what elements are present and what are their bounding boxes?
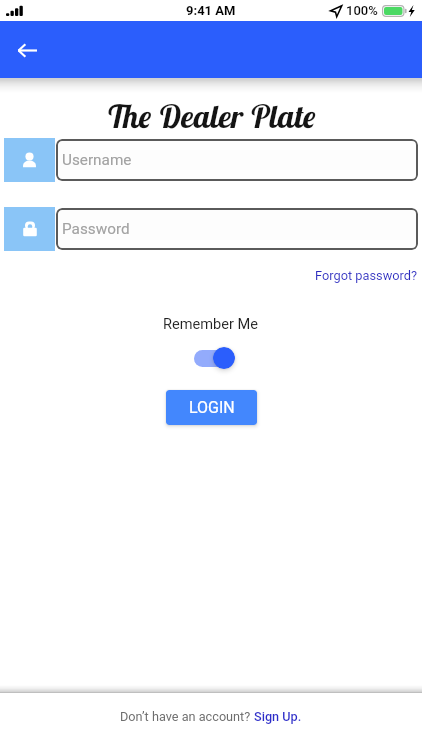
staticText: Remember Me	[163, 315, 259, 332]
button[interactable]: Password	[56, 208, 418, 250]
staticText: 100%	[346, 3, 378, 18]
button[interactable]: LOGIN	[166, 390, 257, 425]
staticText: Don’t have an account?	[120, 709, 254, 724]
staticText: LOGIN	[189, 398, 235, 417]
button[interactable]: Remember Me toggle	[194, 347, 238, 369]
staticText: Username	[62, 151, 132, 169]
staticText: Sign Up.	[254, 709, 302, 724]
staticText: Forgot password?	[315, 268, 418, 283]
button[interactable]: Username	[56, 139, 418, 181]
button[interactable]: Forgot password?	[315, 266, 422, 285]
button[interactable]: Back	[10, 33, 44, 67]
button[interactable]: Sign Up.	[254, 709, 302, 724]
staticText: The Dealer Plate	[106, 96, 316, 136]
staticText: Password	[62, 220, 130, 238]
staticText: 9:41 AM	[186, 3, 236, 18]
